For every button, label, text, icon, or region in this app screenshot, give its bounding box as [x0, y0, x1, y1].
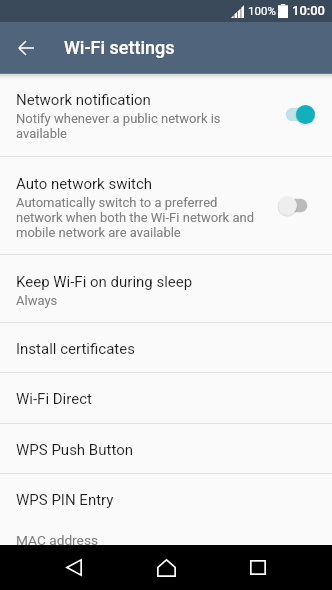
staticText: Wi-Fi settings: [64, 37, 175, 59]
staticText: Wi-Fi Direct: [16, 391, 92, 408]
staticText: WPS PIN Entry: [16, 492, 114, 509]
button[interactable]: Keep Wi-Fi on during sleep: [0, 255, 332, 322]
button[interactable]: Off: [278, 196, 315, 215]
button[interactable]: Network notification: [0, 73, 332, 156]
button[interactable]: WPS PIN Entry: [0, 474, 332, 524]
staticText: Automatically switch to a preferred netw…: [16, 195, 260, 240]
button[interactable]: WPS Push Button: [0, 424, 332, 473]
button[interactable]: Home: [120, 545, 212, 590]
button[interactable]: On: [278, 105, 315, 124]
button[interactable]: MAC address: [0, 524, 332, 545]
staticText: 100%: [248, 4, 276, 18]
staticText: 10:00: [292, 3, 325, 19]
staticText: Auto network switch: [16, 176, 153, 193]
button[interactable]: Back: [0, 22, 52, 73]
staticText: Always: [16, 293, 58, 308]
button[interactable]: Auto network switch: [0, 157, 332, 254]
button[interactable]: Back: [28, 545, 120, 590]
staticText: Install certificates: [16, 341, 135, 358]
staticText: MAC address: [16, 532, 99, 548]
staticText: Network notification: [16, 92, 151, 109]
staticText: Notify whenever a public network is avai…: [16, 111, 260, 141]
button[interactable]: Wi-Fi Direct: [0, 373, 332, 423]
button[interactable]: Recent apps: [212, 545, 304, 590]
staticText: Keep Wi-Fi on during sleep: [16, 274, 193, 291]
staticText: WPS Push Button: [16, 442, 133, 459]
button[interactable]: Install certificates: [0, 323, 332, 372]
